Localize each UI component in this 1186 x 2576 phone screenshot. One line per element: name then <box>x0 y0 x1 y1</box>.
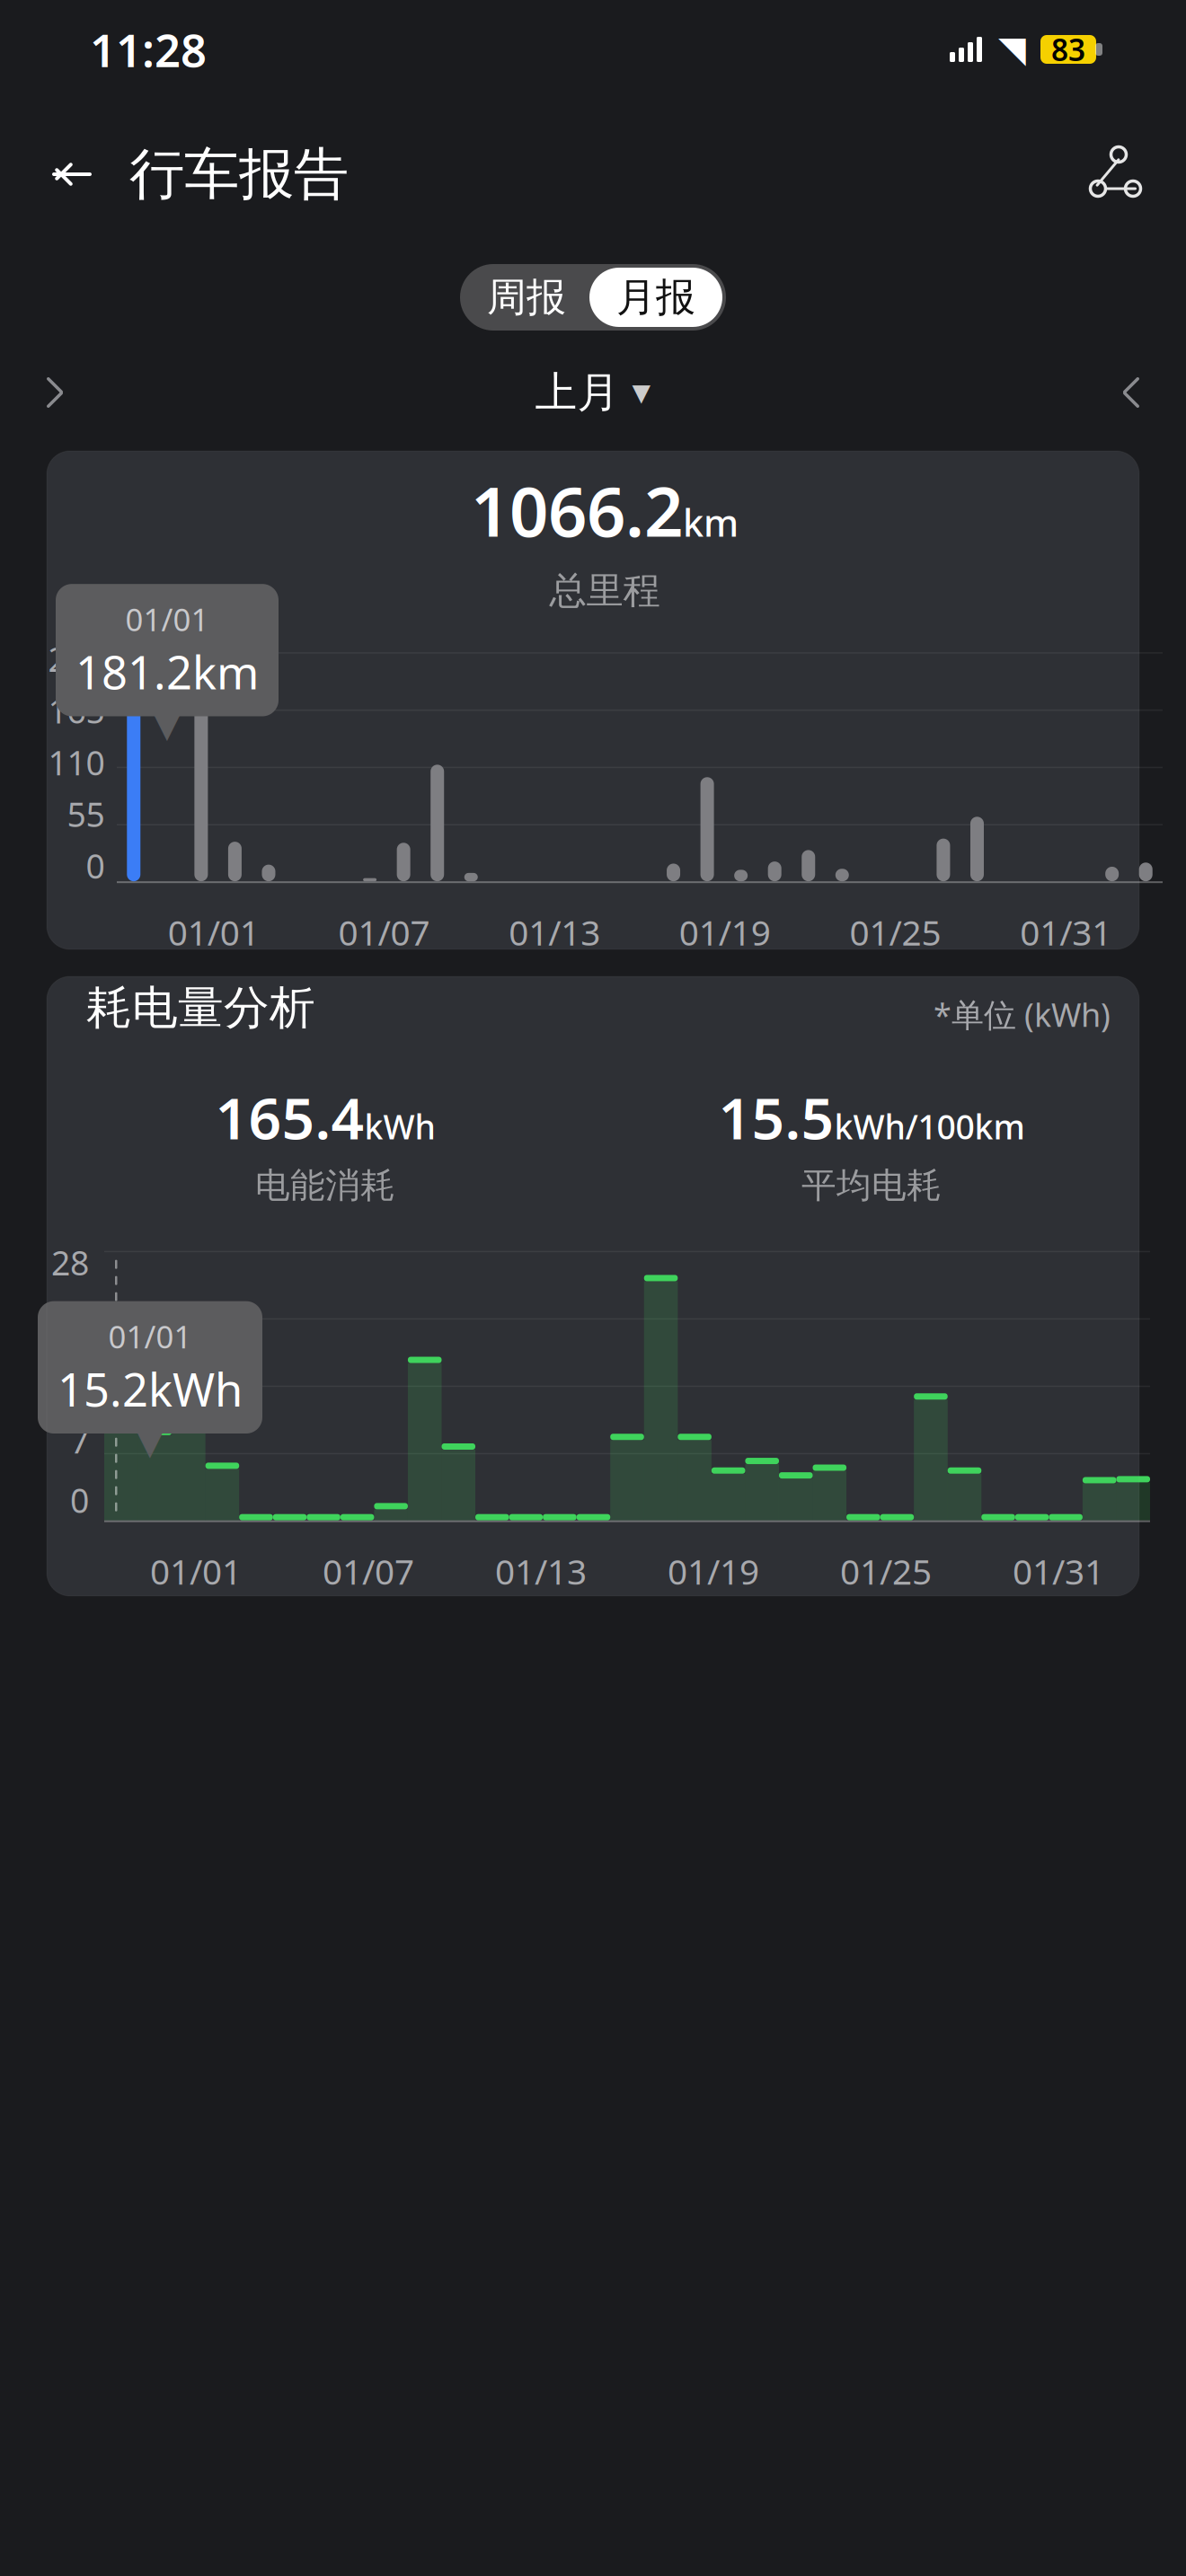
staticText: 01/25 <box>840 1548 932 1594</box>
staticText: 28 <box>51 1240 89 1285</box>
staticText: 总里程 <box>549 568 660 614</box>
staticText: 01/01 <box>108 1316 192 1357</box>
staticText: ▼ <box>632 379 651 406</box>
staticText: 01/31 <box>1013 1548 1104 1594</box>
staticText: 01/13 <box>509 909 600 955</box>
staticText: 月报 <box>616 273 695 322</box>
staticText: 55 <box>67 792 105 836</box>
staticText: 1066.2 <box>471 465 683 555</box>
staticText: 15.5 <box>718 1079 834 1155</box>
staticText: 0 <box>86 843 105 888</box>
staticText: 181.2km <box>75 641 259 702</box>
button[interactable]: Back <box>32 140 111 208</box>
staticText: 01/13 <box>495 1548 587 1594</box>
staticText: 21 <box>51 1299 89 1344</box>
staticText: 电能消耗 <box>255 1164 395 1207</box>
staticText: 上月 <box>535 367 620 418</box>
staticText: ◥ <box>998 29 1026 70</box>
button[interactable]: 月报 <box>589 268 722 327</box>
button[interactable]: Previous month <box>20 356 90 429</box>
staticText: 165.4 <box>215 1079 364 1155</box>
staticText: 行车报告 <box>129 140 349 208</box>
button[interactable]: Next month <box>1096 356 1166 429</box>
staticText: 165 <box>48 688 105 733</box>
staticText: 0 <box>70 1478 89 1522</box>
staticText: ▼ <box>154 706 180 745</box>
staticText: 11:28 <box>90 19 207 80</box>
staticText: 01/31 <box>1020 909 1112 955</box>
staticText: 83 <box>1051 30 1085 69</box>
staticText: ▼ <box>137 1424 163 1462</box>
staticText: 01/25 <box>850 909 941 955</box>
staticText: 01/01 <box>125 598 209 640</box>
staticText: kWh <box>364 1104 435 1149</box>
button[interactable]: Share <box>1073 137 1154 211</box>
staticText: 01/01 <box>168 909 259 955</box>
button[interactable]: 周报 <box>464 268 589 327</box>
staticText: 110 <box>48 740 105 785</box>
staticText: 01/01 <box>150 1548 242 1594</box>
staticText: *单位 (kWh) <box>934 993 1111 1036</box>
button[interactable]: 上月 <box>521 356 665 429</box>
staticText: km <box>683 498 739 547</box>
staticText: 220 <box>48 637 105 681</box>
staticText: 01/07 <box>323 1548 414 1594</box>
staticText: 耗电量分析 <box>86 980 315 1036</box>
staticText: 周报 <box>487 273 566 322</box>
staticText: 01/07 <box>338 909 430 955</box>
staticText: 平均电耗 <box>801 1164 942 1207</box>
staticText: 14 <box>51 1359 89 1403</box>
staticText: 01/19 <box>679 909 771 955</box>
staticText: 01/19 <box>668 1548 759 1594</box>
staticText: kWh/100km <box>834 1104 1025 1149</box>
staticText: 7 <box>70 1418 89 1463</box>
staticText: 15.2kWh <box>58 1359 243 1419</box>
